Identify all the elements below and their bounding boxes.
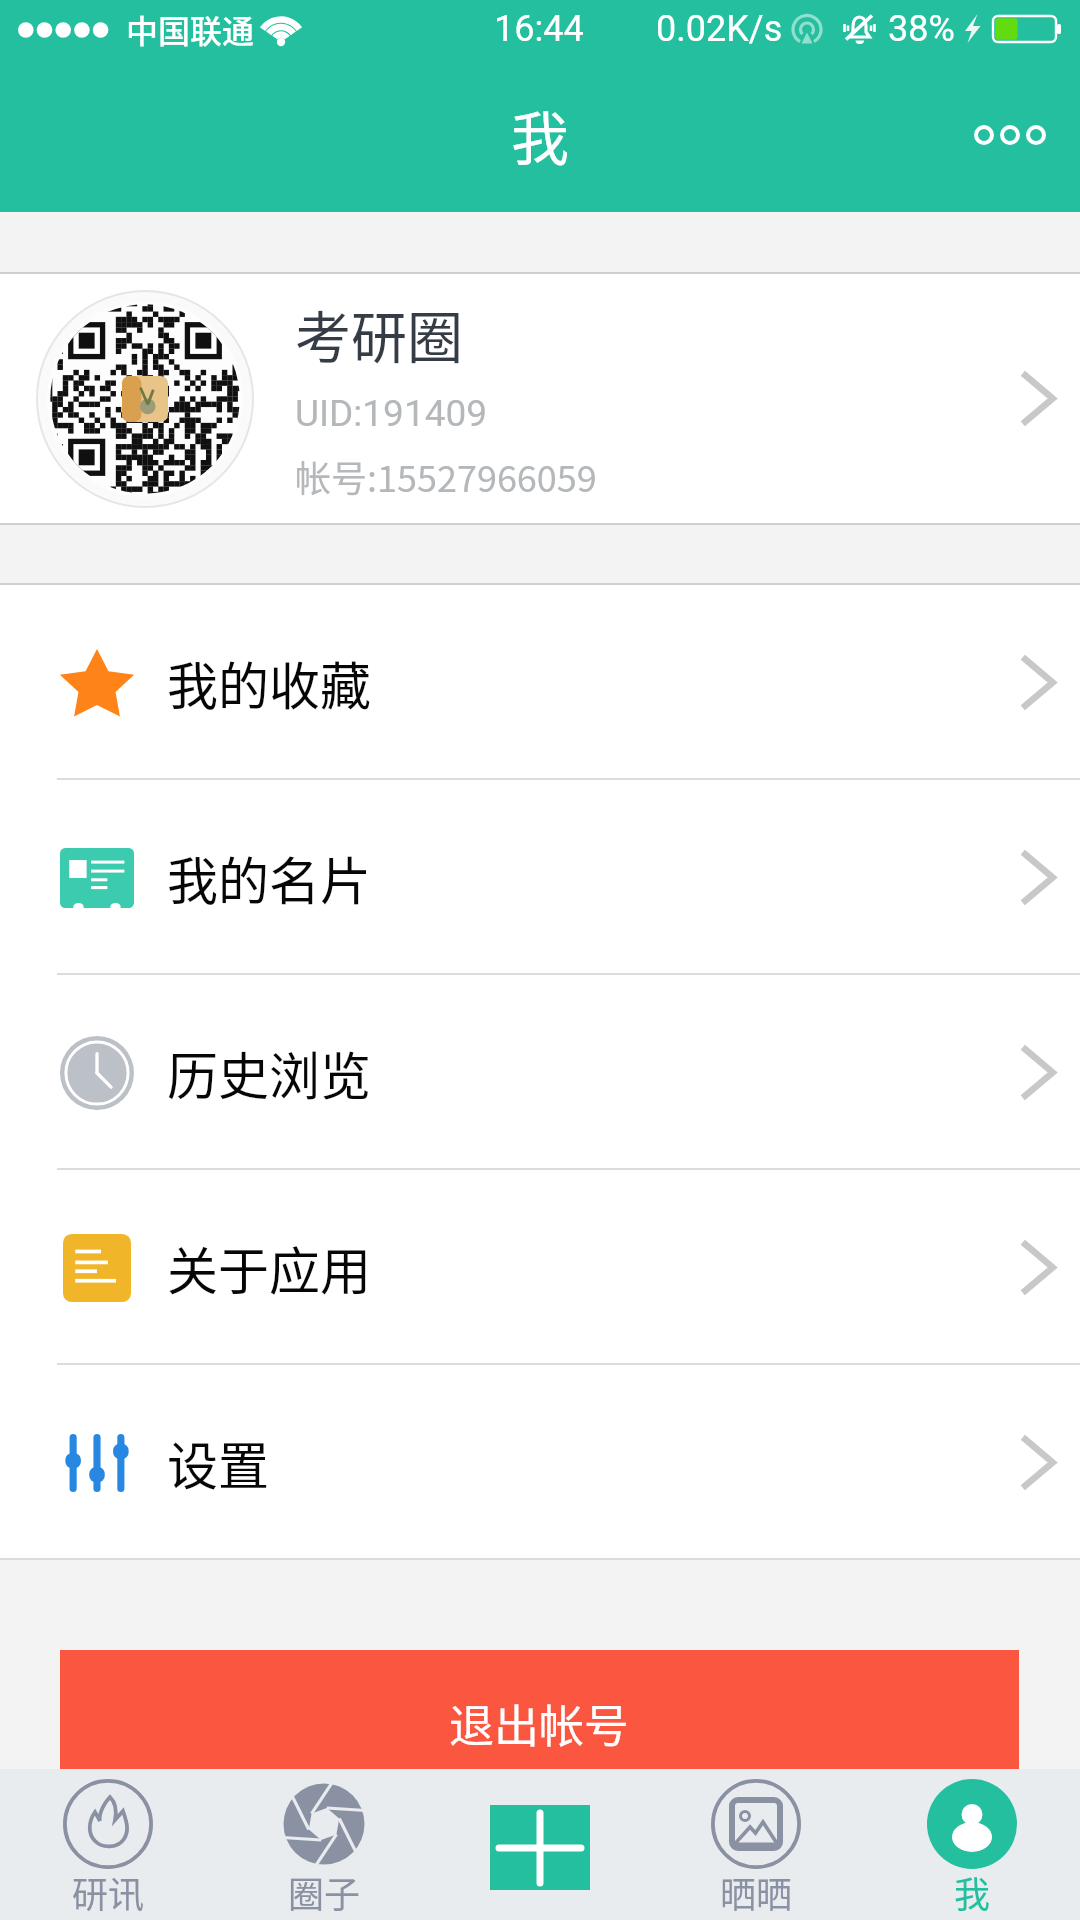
button[interactable]: 退出帐号 [60, 1650, 1019, 1769]
staticText: 设置 [167, 1426, 270, 1500]
staticText: 0.02K/s [656, 8, 783, 50]
button[interactable]: 历史浏览 [0, 975, 1080, 1170]
staticText: 晒晒 [720, 1866, 793, 1918]
staticText: 我 [954, 1866, 991, 1918]
button[interactable]: 我的收藏 [0, 585, 1080, 780]
staticText: 关于应用 [167, 1231, 372, 1305]
staticText: 我 [511, 93, 570, 177]
button[interactable]: 关于应用 [0, 1170, 1080, 1365]
button[interactable]: 考研圈 [0, 274, 1080, 523]
button[interactable]: Add post [490, 1805, 590, 1890]
staticText: 中国联通 [126, 6, 255, 52]
staticText: UID:191409 [295, 392, 488, 435]
button[interactable]: More options [955, 80, 1065, 190]
staticText: 我的收藏 [167, 646, 372, 720]
staticText: 考研圈 [295, 293, 463, 374]
staticText: 退出帐号 [449, 1691, 630, 1756]
staticText: 帐号:15527966059 [295, 450, 597, 502]
staticText: 研讯 [72, 1866, 145, 1918]
staticText: 38% [888, 8, 955, 50]
button[interactable]: 我的名片 [0, 780, 1080, 975]
staticText: 我的名片 [167, 841, 372, 915]
button[interactable]: 晒晒 [648, 1769, 864, 1920]
button[interactable]: 研讯 [0, 1769, 216, 1920]
staticText: 历史浏览 [167, 1036, 372, 1110]
button[interactable]: 设置 [0, 1365, 1080, 1560]
staticText: 圈子 [288, 1866, 361, 1918]
button[interactable]: 我 [864, 1769, 1080, 1920]
staticText: 16:44 [494, 8, 584, 50]
button[interactable]: 圈子 [216, 1769, 432, 1920]
